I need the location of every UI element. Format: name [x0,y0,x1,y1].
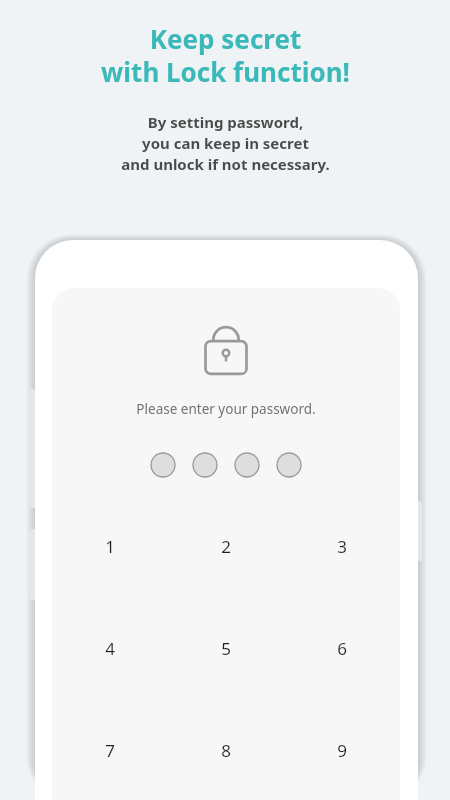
button[interactable]: 1 [52,531,168,561]
staticText: Please enter your password. [52,400,400,418]
other: Locked [185,310,267,392]
button[interactable]: 3 [284,531,400,561]
staticText: 3 [337,535,347,558]
staticText: Keep secret with Lock function! [101,21,350,90]
staticText: 1 [105,535,115,558]
staticText: 4 [105,637,115,660]
button[interactable]: 6 [284,633,400,663]
staticText: 8 [221,739,231,762]
staticText: 7 [105,739,115,762]
staticText: 2 [221,535,231,558]
button[interactable]: 7 [52,735,168,765]
button[interactable]: 2 [168,531,284,561]
button[interactable]: 4 [52,633,168,663]
button[interactable]: 9 [284,735,400,765]
button[interactable]: 5 [168,633,284,663]
button[interactable]: 8 [168,735,284,765]
staticText: By setting password, you can keep in sec… [121,112,330,175]
staticText: 9 [337,739,347,762]
staticText: 5 [221,637,231,660]
staticText: 6 [337,637,347,660]
